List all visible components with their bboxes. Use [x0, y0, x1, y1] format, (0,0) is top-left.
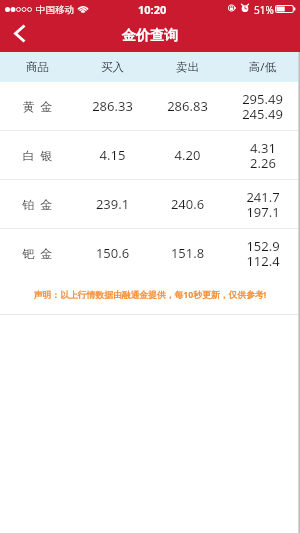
- button[interactable]: 黄 金: [0, 82, 300, 130]
- staticText: 买入: [75, 60, 150, 74]
- staticText: 铂 金: [0, 196, 75, 212]
- staticText: 152.9 112.4: [246, 237, 280, 270]
- staticText: 4.31 2.26: [250, 139, 276, 172]
- staticText: 241.7 197.1: [246, 188, 280, 221]
- staticText: 钯 金: [0, 245, 75, 261]
- staticText: 10:20: [138, 2, 167, 17]
- staticText: 声明：以上行情数据由融通金提供，每10秒更新，仅供参考!: [0, 289, 300, 301]
- staticText: 239.1: [75, 195, 150, 213]
- button[interactable]: 白 银: [0, 131, 300, 179]
- staticText: 金价查询: [122, 27, 178, 45]
- staticText: 286.83: [150, 97, 225, 115]
- staticText: 高/低: [225, 59, 300, 75]
- button[interactable]: Back: [0, 20, 40, 52]
- staticText: 295.49 245.49: [242, 90, 283, 123]
- staticText: 4.15: [75, 146, 150, 164]
- button[interactable]: 钯 金: [0, 229, 300, 277]
- staticText: 51%: [254, 3, 274, 17]
- staticText: 4.20: [150, 146, 225, 164]
- staticText: 286.33: [75, 97, 150, 115]
- staticText: 151.8: [150, 244, 225, 262]
- staticText: 240.6: [150, 195, 225, 213]
- staticText: 卖出: [150, 60, 225, 74]
- staticText: 商品: [0, 60, 75, 74]
- staticText: 中国移动: [36, 4, 74, 16]
- button[interactable]: 铂 金: [0, 180, 300, 228]
- staticText: 150.6: [75, 244, 150, 262]
- staticText: 白 银: [0, 147, 75, 163]
- staticText: 黄 金: [0, 98, 75, 114]
